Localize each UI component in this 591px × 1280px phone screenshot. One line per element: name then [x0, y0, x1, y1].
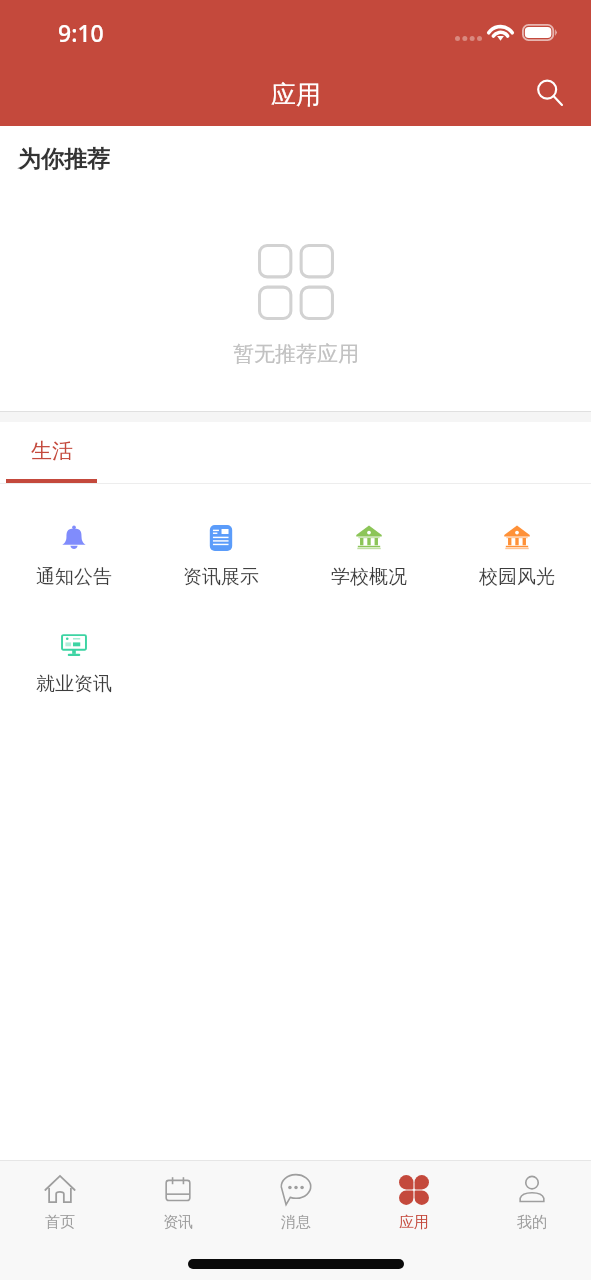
staticText: 消息 [281, 1213, 311, 1232]
staticText: 学校概况 [331, 565, 407, 589]
button[interactable]: 消息 [237, 1161, 355, 1241]
staticText: 应用 [271, 79, 321, 110]
button[interactable]: 我的 [473, 1161, 591, 1241]
button[interactable]: 通知公告 [0, 525, 147, 589]
button[interactable]: 就业资讯 [0, 632, 148, 696]
button[interactable]: 生活 [0, 422, 103, 484]
staticText: 我的 [517, 1213, 547, 1232]
staticText: 应用 [399, 1213, 429, 1232]
staticText: 通知公告 [36, 565, 112, 589]
staticText: 暂无推荐应用 [233, 341, 359, 367]
button[interactable]: Search [527, 70, 571, 114]
button[interactable]: 资讯展示 [147, 525, 295, 589]
staticText: 资讯展示 [183, 565, 259, 589]
button[interactable]: 首页 [0, 1161, 119, 1241]
staticText: 校园风光 [479, 565, 555, 589]
button[interactable]: 校园风光 [443, 525, 591, 589]
staticText: 为你推荐 [18, 145, 110, 174]
staticText: 资讯 [163, 1213, 193, 1232]
button[interactable]: 资讯 [119, 1161, 237, 1241]
staticText: 生活 [31, 438, 73, 464]
button[interactable]: 学校概况 [295, 525, 443, 589]
button[interactable]: 应用 [355, 1161, 473, 1241]
staticText: 9:10 [58, 17, 104, 48]
staticText: 就业资讯 [36, 672, 112, 696]
staticText: 首页 [45, 1213, 75, 1232]
